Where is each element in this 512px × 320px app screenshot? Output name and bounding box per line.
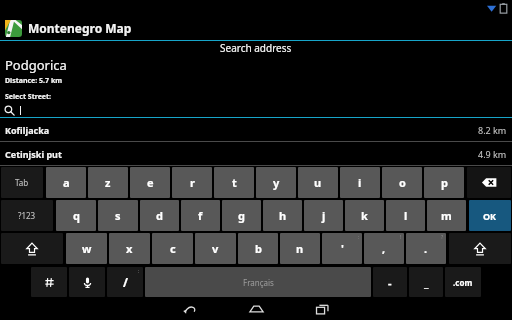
button[interactable]: _ [409, 267, 443, 297]
staticText: p [441, 175, 448, 190]
staticText: c [170, 241, 176, 256]
staticText: Podgorica [5, 56, 67, 74]
staticText: _ [424, 275, 429, 290]
button[interactable]: l [386, 200, 425, 231]
button[interactable]: z [88, 167, 128, 198]
staticText: u [314, 175, 322, 190]
button[interactable]: n [280, 233, 320, 264]
staticText: i [358, 175, 362, 190]
button[interactable]: OK [469, 200, 511, 231]
button[interactable] [0, 104, 512, 118]
staticText: l [404, 208, 408, 223]
staticText: Distance: 5.7 km [5, 76, 63, 86]
staticText: . [424, 241, 428, 256]
button[interactable]: Change language [31, 267, 67, 297]
staticText: 8.2 km [478, 124, 507, 136]
button[interactable]: d [140, 200, 179, 231]
button[interactable]: h [263, 200, 302, 231]
staticText: ! [400, 234, 402, 241]
staticText: v [212, 241, 219, 256]
button[interactable]: g [222, 200, 261, 231]
staticText: : [138, 268, 140, 275]
staticText: t [232, 175, 237, 190]
button[interactable]: b [238, 233, 278, 264]
staticText: , [382, 241, 386, 256]
staticText: d [156, 208, 163, 223]
staticText: ? [441, 234, 444, 241]
button[interactable]: .com [445, 267, 481, 297]
button[interactable]: m [427, 200, 466, 231]
staticText: z [105, 175, 111, 190]
staticText: m [441, 208, 452, 223]
button[interactable]: ' [322, 233, 362, 264]
button[interactable]: p [424, 167, 464, 198]
button[interactable]: a [46, 167, 86, 198]
staticText: : [358, 234, 360, 241]
staticText: x [126, 241, 133, 256]
button[interactable]: Home [236, 298, 276, 320]
staticText: j [322, 208, 326, 223]
staticText: s [115, 208, 121, 223]
button[interactable]: Shift [449, 233, 511, 264]
button[interactable]: c [152, 233, 193, 264]
staticText: f [198, 208, 203, 223]
button[interactable]: - [373, 267, 407, 297]
button[interactable]: e [130, 167, 170, 198]
button[interactable]: Kofiljacka [0, 118, 512, 142]
staticText: n [296, 241, 304, 256]
staticText: / [123, 274, 128, 290]
button[interactable]: k [345, 200, 384, 231]
button[interactable]: Backspace [467, 167, 511, 198]
staticText: a [63, 175, 70, 190]
button[interactable]: Tab [1, 167, 43, 198]
staticText: Tab [15, 177, 29, 188]
staticText: .com [453, 277, 473, 288]
staticText: w [82, 241, 92, 256]
staticText: Kofiljacka [5, 124, 50, 136]
staticText: 4.9 km [478, 148, 507, 160]
button[interactable]: v [195, 233, 236, 264]
button[interactable]: Cetinjski put [0, 142, 512, 166]
button[interactable]: w [66, 233, 107, 264]
button[interactable]: s [98, 200, 138, 231]
button[interactable]: f [181, 200, 220, 231]
button[interactable]: / [107, 267, 143, 297]
button[interactable]: Montenegro Map [0, 16, 512, 40]
staticText: Cetinjski put [5, 148, 62, 160]
staticText: y [273, 175, 280, 190]
staticText: - [388, 275, 392, 290]
staticText: Montenegro Map [28, 20, 132, 36]
staticText: OK [483, 210, 497, 222]
staticText: Français [243, 277, 274, 288]
staticText: Search address [220, 41, 292, 53]
staticText: ?123 [18, 210, 36, 221]
staticText: h [279, 208, 287, 223]
button[interactable]: Space [145, 267, 371, 297]
button[interactable]: Back [170, 298, 210, 320]
button[interactable]: Shift [1, 233, 63, 264]
staticText: o [399, 175, 406, 190]
button[interactable]: u [298, 167, 338, 198]
button[interactable]: q [56, 200, 96, 231]
staticText: Select Street: [5, 92, 52, 102]
button[interactable]: Voice input [69, 267, 105, 297]
button[interactable]: r [172, 167, 212, 198]
button[interactable]: o [382, 167, 422, 198]
button[interactable]: Recent apps [302, 298, 342, 320]
button[interactable]: . [406, 233, 446, 264]
button[interactable]: x [109, 233, 150, 264]
button[interactable]: y [256, 167, 296, 198]
button[interactable]: , [364, 233, 404, 264]
button[interactable]: ?123 [1, 200, 53, 231]
staticText: q [73, 208, 80, 223]
staticText: r [190, 175, 195, 190]
staticText: e [147, 175, 154, 190]
button[interactable]: j [304, 200, 343, 231]
staticText: g [238, 208, 245, 223]
staticText: b [255, 241, 262, 256]
staticText: k [361, 208, 368, 223]
button[interactable]: i [340, 167, 380, 198]
staticText: ' [341, 241, 344, 256]
button[interactable]: t [214, 167, 254, 198]
